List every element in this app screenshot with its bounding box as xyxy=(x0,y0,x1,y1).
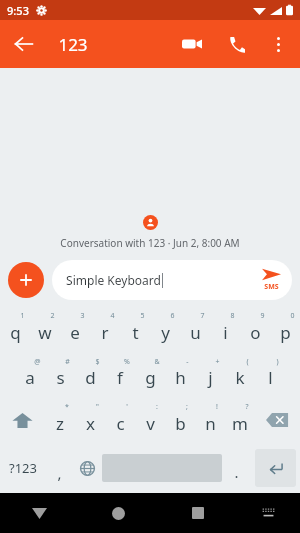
staticText: v xyxy=(146,412,155,435)
button[interactable]: Hide keyboard xyxy=(0,493,79,533)
staticText: . xyxy=(234,462,239,482)
button[interactable]: Call xyxy=(214,22,258,66)
button[interactable]: Back xyxy=(0,20,48,68)
staticText: 9:53 xyxy=(7,3,29,18)
staticText: o xyxy=(250,321,261,344)
staticText: % xyxy=(124,357,130,367)
staticText: a xyxy=(25,366,35,389)
button[interactable]: Simple Keyboard xyxy=(52,260,292,300)
button[interactable]: 9 xyxy=(240,306,270,352)
button[interactable]: ( xyxy=(225,352,255,397)
button[interactable]: ! xyxy=(195,397,225,443)
button[interactable]: ?123 xyxy=(0,443,45,493)
staticText: : xyxy=(156,402,158,412)
button[interactable]: & xyxy=(135,352,165,397)
staticText: q xyxy=(10,321,21,344)
staticText: ? xyxy=(245,402,249,412)
button[interactable]: Home xyxy=(79,493,158,533)
staticText: ( xyxy=(246,357,249,367)
staticText: + xyxy=(215,357,220,367)
staticText: 6 xyxy=(170,311,175,321)
staticText: ) xyxy=(276,357,279,367)
staticText: m xyxy=(232,412,248,435)
staticText: s xyxy=(56,366,65,389)
staticText: @ xyxy=(34,357,41,367)
button[interactable]: " xyxy=(75,397,105,443)
button[interactable]: 5 xyxy=(120,306,150,352)
button[interactable]: 4 xyxy=(90,306,120,352)
staticText: k xyxy=(235,366,245,389)
staticText: ; xyxy=(186,402,188,412)
button[interactable]: - xyxy=(165,352,195,397)
staticText: f xyxy=(117,366,123,389)
button[interactable]: 2 xyxy=(30,306,60,352)
staticText: d xyxy=(85,366,96,389)
button[interactable]: 1 xyxy=(0,306,30,352)
staticText: z xyxy=(56,412,64,435)
staticText: 7 xyxy=(200,311,205,321)
staticText: e xyxy=(70,321,80,344)
button[interactable]: 0 xyxy=(270,306,300,352)
button[interactable]: ) xyxy=(255,352,285,397)
button[interactable]: # xyxy=(45,352,75,397)
staticText: n xyxy=(205,412,216,435)
staticText: 5 xyxy=(140,311,145,321)
button[interactable]: Enter xyxy=(255,449,296,487)
staticText: r xyxy=(101,321,109,344)
staticText: i xyxy=(223,321,228,344)
button[interactable]: @ xyxy=(15,352,45,397)
button[interactable]: 6 xyxy=(150,306,180,352)
staticText: b xyxy=(175,412,186,435)
button[interactable]: : xyxy=(135,397,165,443)
button[interactable]: ; xyxy=(165,397,195,443)
staticText: , xyxy=(57,463,62,483)
button[interactable]: Video call xyxy=(170,22,214,66)
staticText: 123 xyxy=(58,33,88,56)
staticText: - xyxy=(186,357,189,367)
staticText: c xyxy=(116,412,125,435)
button[interactable]: , xyxy=(45,443,73,493)
staticText: l xyxy=(268,366,273,389)
staticText: 3 xyxy=(80,311,85,321)
button[interactable]: + xyxy=(195,352,225,397)
button[interactable]: Keyboard indicator xyxy=(237,493,300,533)
staticText: Conversation with 123 · Jun 2, 8:00 AM xyxy=(60,236,240,250)
staticText: ' xyxy=(126,402,128,412)
button[interactable]: Send SMS xyxy=(250,260,292,300)
staticText: 0 xyxy=(290,311,295,321)
staticText: 8 xyxy=(230,311,235,321)
button[interactable]: Backspace xyxy=(255,397,300,443)
button[interactable]: 7 xyxy=(180,306,210,352)
button[interactable]: Add attachment xyxy=(8,262,44,298)
button[interactable]: Change language xyxy=(73,443,102,493)
button[interactable]: $ xyxy=(75,352,105,397)
staticText: w xyxy=(38,321,52,344)
button[interactable]: * xyxy=(45,397,75,443)
staticText: ! xyxy=(216,402,218,412)
button[interactable]: 8 xyxy=(210,306,240,352)
staticText: 1 xyxy=(20,311,25,321)
button[interactable]: ? xyxy=(225,397,255,443)
staticText: x xyxy=(86,412,95,435)
staticText: 9 xyxy=(260,311,265,321)
button[interactable]: Recent apps xyxy=(158,493,237,533)
button[interactable]: More options xyxy=(258,24,298,64)
button[interactable]: ' xyxy=(105,397,135,443)
staticText: t xyxy=(132,321,139,344)
button[interactable]: . xyxy=(222,443,251,493)
staticText: h xyxy=(175,366,186,389)
staticText: ?123 xyxy=(9,459,37,477)
staticText: & xyxy=(154,357,160,367)
staticText: Simple Keyboard xyxy=(66,272,161,288)
staticText: u xyxy=(190,321,201,344)
staticText: 2 xyxy=(50,311,55,321)
staticText: j xyxy=(208,366,213,389)
staticText: p xyxy=(280,321,291,344)
button[interactable]: 3 xyxy=(60,306,90,352)
staticText: y xyxy=(161,321,170,344)
button[interactable]: % xyxy=(105,352,135,397)
staticText: $ xyxy=(95,357,100,367)
button[interactable]: Shift xyxy=(0,397,45,443)
staticText: " xyxy=(96,402,99,412)
